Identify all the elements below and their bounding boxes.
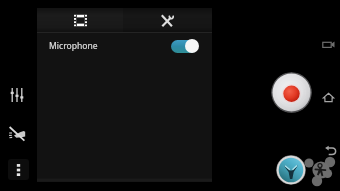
button[interactable]: Back — [323, 143, 338, 158]
button[interactable]: General settings — [123, 8, 212, 32]
button[interactable]: Share — [303, 155, 337, 189]
button[interactable]: Recent apps — [321, 36, 336, 51]
button[interactable]: Video settings — [37, 8, 123, 32]
button[interactable]: Microphone — [37, 33, 212, 58]
button[interactable]: Home — [321, 90, 336, 105]
button[interactable]: Record — [271, 72, 312, 113]
button[interactable]: Flash off — [8, 123, 28, 143]
button[interactable]: Gallery — [276, 155, 306, 185]
button[interactable]: Settings — [9, 87, 25, 103]
staticText: Microphone — [49, 40, 98, 52]
button[interactable]: More options — [8, 159, 29, 180]
